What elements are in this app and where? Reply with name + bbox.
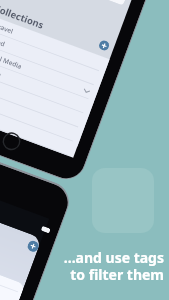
button[interactable]: Recipes	[0, 99, 78, 158]
staticText: Collections	[0, 1, 46, 32]
button[interactable]: Work	[0, 71, 89, 130]
button[interactable]: System	[0, 57, 94, 115]
button[interactable]: Personal	[0, 85, 84, 144]
staticText: Food	[0, 35, 7, 49]
button[interactable]: Add collection	[98, 39, 110, 52]
button[interactable]: Food	[0, 29, 104, 87]
button[interactable]: Add collection	[26, 239, 40, 253]
staticText: Social Media	[0, 49, 23, 71]
staticText: ...and use tags to filter them	[63, 248, 164, 284]
button[interactable]: Social Media	[0, 43, 99, 101]
staticText: System	[0, 63, 3, 79]
staticText: Travel	[0, 21, 15, 36]
button[interactable]: Travel	[0, 15, 110, 73]
